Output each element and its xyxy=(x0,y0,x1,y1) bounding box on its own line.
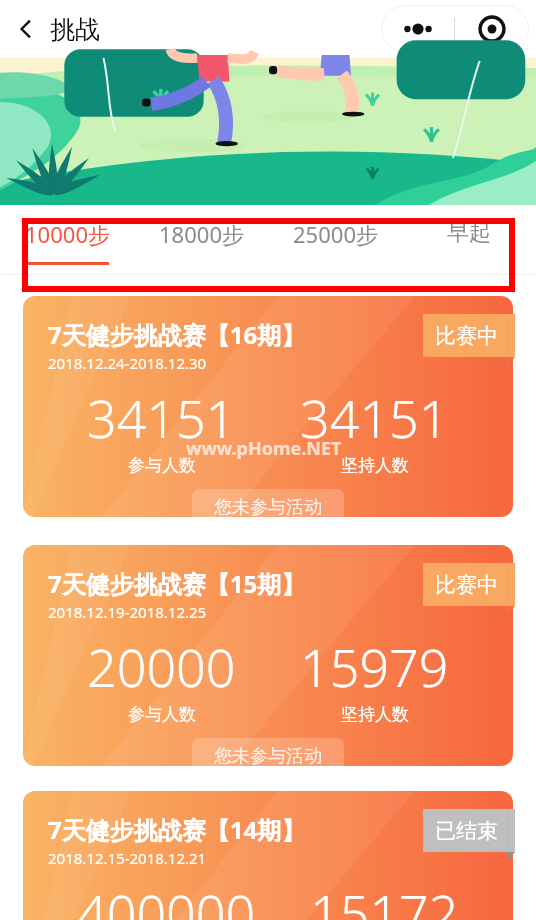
staticText: 坚持人数 xyxy=(341,455,409,476)
staticText: 7天健步挑战赛【14期】 xyxy=(48,813,306,846)
staticText: 挑战 xyxy=(50,14,100,45)
button[interactable]: 您未参与活动 xyxy=(192,738,344,766)
staticText: 400000 xyxy=(77,877,256,920)
staticText: 15979 xyxy=(300,631,449,702)
staticText: 参与人数 xyxy=(128,704,196,725)
staticText: 18000步 xyxy=(159,219,244,249)
button[interactable]: Close xyxy=(455,5,529,53)
button[interactable]: 18000步 xyxy=(134,211,268,269)
staticText: 2018.12.24-2018.12.30 xyxy=(48,353,207,373)
button[interactable]: 10000步 xyxy=(0,211,134,269)
staticText: 2018.12.15-2018.12.21 xyxy=(48,848,207,868)
button[interactable]: 25000步 xyxy=(268,211,402,269)
button[interactable]: 早起 xyxy=(402,211,536,269)
staticText: 7天健步挑战赛【16期】 xyxy=(48,318,306,351)
staticText: 20000 xyxy=(87,631,236,702)
button[interactable]: Back xyxy=(4,7,48,51)
button[interactable]: 7天健步挑战赛【15期】 xyxy=(23,545,513,766)
button[interactable]: 7天健步挑战赛【14期】 xyxy=(23,791,513,920)
staticText: 比赛中 xyxy=(435,323,498,349)
staticText: www.pHome.NET xyxy=(186,436,342,461)
staticText: 参与人数 xyxy=(128,455,196,476)
staticText: 34151 xyxy=(87,382,236,453)
staticText: 7天健步挑战赛【15期】 xyxy=(48,567,306,600)
staticText: 您未参与活动 xyxy=(214,745,322,766)
staticText: 15172 xyxy=(310,877,459,920)
button[interactable]: 您未参与活动 xyxy=(192,489,344,517)
staticText: 34151 xyxy=(300,382,449,453)
staticText: 10000步 xyxy=(25,219,110,249)
staticText: 2018.12.19-2018.12.25 xyxy=(48,602,207,622)
button[interactable]: 7天健步挑战赛【16期】 xyxy=(23,296,513,517)
staticText: 比赛中 xyxy=(435,572,498,598)
button[interactable]: More xyxy=(381,5,454,53)
staticText: 已结束 xyxy=(435,818,498,844)
staticText: 25000步 xyxy=(293,219,378,249)
staticText: 早起 xyxy=(447,219,491,247)
staticText: 您未参与活动 xyxy=(214,496,322,517)
staticText: 坚持人数 xyxy=(341,704,409,725)
